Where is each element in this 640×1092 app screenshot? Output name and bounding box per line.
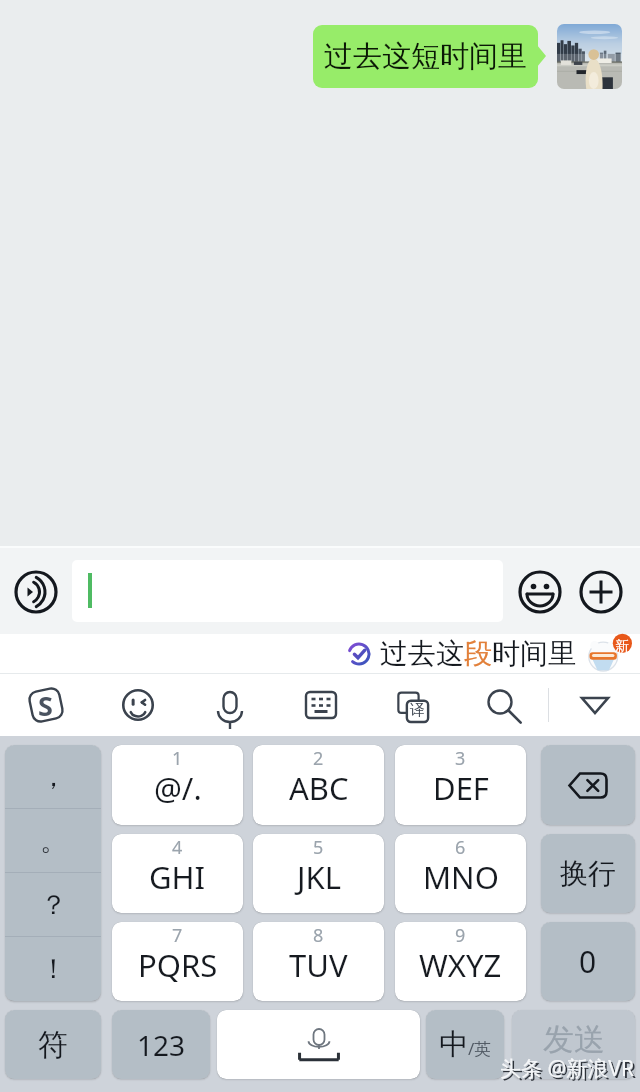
button[interactable]: 0	[541, 922, 635, 1001]
button[interactable]: ？	[5, 873, 101, 937]
staticText: 新	[615, 638, 629, 656]
button[interactable]	[72, 560, 503, 622]
staticText: 7	[172, 923, 183, 948]
staticText: MNO	[423, 856, 499, 898]
button[interactable]: Emoji	[515, 567, 565, 617]
staticText: PQRS	[138, 944, 218, 986]
staticText: 4	[172, 835, 183, 860]
staticText: 段	[464, 636, 492, 671]
staticText: 符	[38, 1026, 68, 1064]
button[interactable]: Search	[457, 674, 548, 736]
staticText: ，	[40, 760, 67, 794]
staticText: 2	[313, 746, 324, 771]
button[interactable]: Voice	[184, 674, 275, 736]
staticText: WXYZ	[419, 944, 502, 986]
button[interactable]: 发送	[512, 1010, 635, 1079]
staticText: 。	[40, 824, 67, 858]
staticText: ？	[40, 888, 67, 922]
button[interactable]: 4	[112, 834, 243, 913]
button[interactable]: 3	[395, 745, 526, 825]
staticText: 9	[455, 923, 466, 948]
button[interactable]: 123	[112, 1010, 210, 1079]
button[interactable]: 7	[112, 922, 243, 1001]
staticText: 123	[137, 1026, 186, 1064]
button[interactable]: Translate	[366, 674, 457, 736]
button[interactable]: Sogou input	[0, 674, 92, 736]
button[interactable]: 过去这	[380, 636, 576, 671]
staticText: 5	[313, 835, 324, 860]
staticText: /英	[468, 1037, 492, 1060]
button[interactable]: Keyboard	[275, 674, 366, 736]
button[interactable]: New sticker	[584, 634, 632, 673]
button[interactable]: Emoticons	[92, 674, 184, 736]
staticText: 0	[579, 941, 597, 982]
button[interactable]: 5	[253, 834, 384, 913]
button[interactable]: 2	[253, 745, 384, 825]
staticText: 3	[455, 746, 466, 771]
button[interactable]: Space / voice	[217, 1010, 420, 1079]
button[interactable]: 8	[253, 922, 384, 1001]
staticText: JKL	[297, 856, 341, 898]
staticText: S	[38, 687, 53, 724]
staticText: TUV	[289, 944, 348, 986]
button[interactable]: 1	[112, 745, 243, 825]
staticText: ABC	[289, 767, 349, 809]
button[interactable]: 过去这短时间里	[313, 25, 538, 88]
staticText: 中	[439, 1026, 468, 1063]
staticText: DEF	[433, 767, 489, 809]
button[interactable]: Voice input	[11, 567, 61, 617]
staticText: 译	[410, 701, 425, 720]
staticText: 过去这短时间里	[324, 38, 527, 75]
button[interactable]: 6	[395, 834, 526, 913]
button[interactable]: 中	[426, 1010, 504, 1079]
button[interactable]: More	[576, 567, 626, 617]
staticText: GHI	[149, 856, 206, 898]
button[interactable]: Avatar	[557, 24, 622, 89]
staticText: @/.	[154, 767, 202, 809]
staticText: 头条 @新浪VR	[502, 1056, 637, 1085]
button[interactable]: Collapse keyboard	[549, 674, 640, 736]
button[interactable]: 9	[395, 922, 526, 1001]
staticText: 过去这	[380, 636, 464, 671]
button[interactable]: ！	[5, 937, 101, 1001]
button[interactable]: Backspace	[541, 745, 635, 825]
staticText: 时间里	[492, 636, 576, 671]
staticText: 换行	[560, 856, 616, 891]
staticText: ！	[40, 952, 67, 986]
button[interactable]: 符	[5, 1010, 101, 1079]
staticText: 8	[313, 923, 324, 948]
staticText: 头条 @新浪VR	[500, 1054, 635, 1083]
button[interactable]: 换行	[541, 834, 635, 913]
button[interactable]: 。	[5, 809, 101, 873]
staticText: 1	[172, 746, 183, 771]
staticText: 6	[455, 835, 466, 860]
staticText: 发送	[543, 1020, 605, 1059]
button[interactable]: ，	[5, 745, 101, 809]
